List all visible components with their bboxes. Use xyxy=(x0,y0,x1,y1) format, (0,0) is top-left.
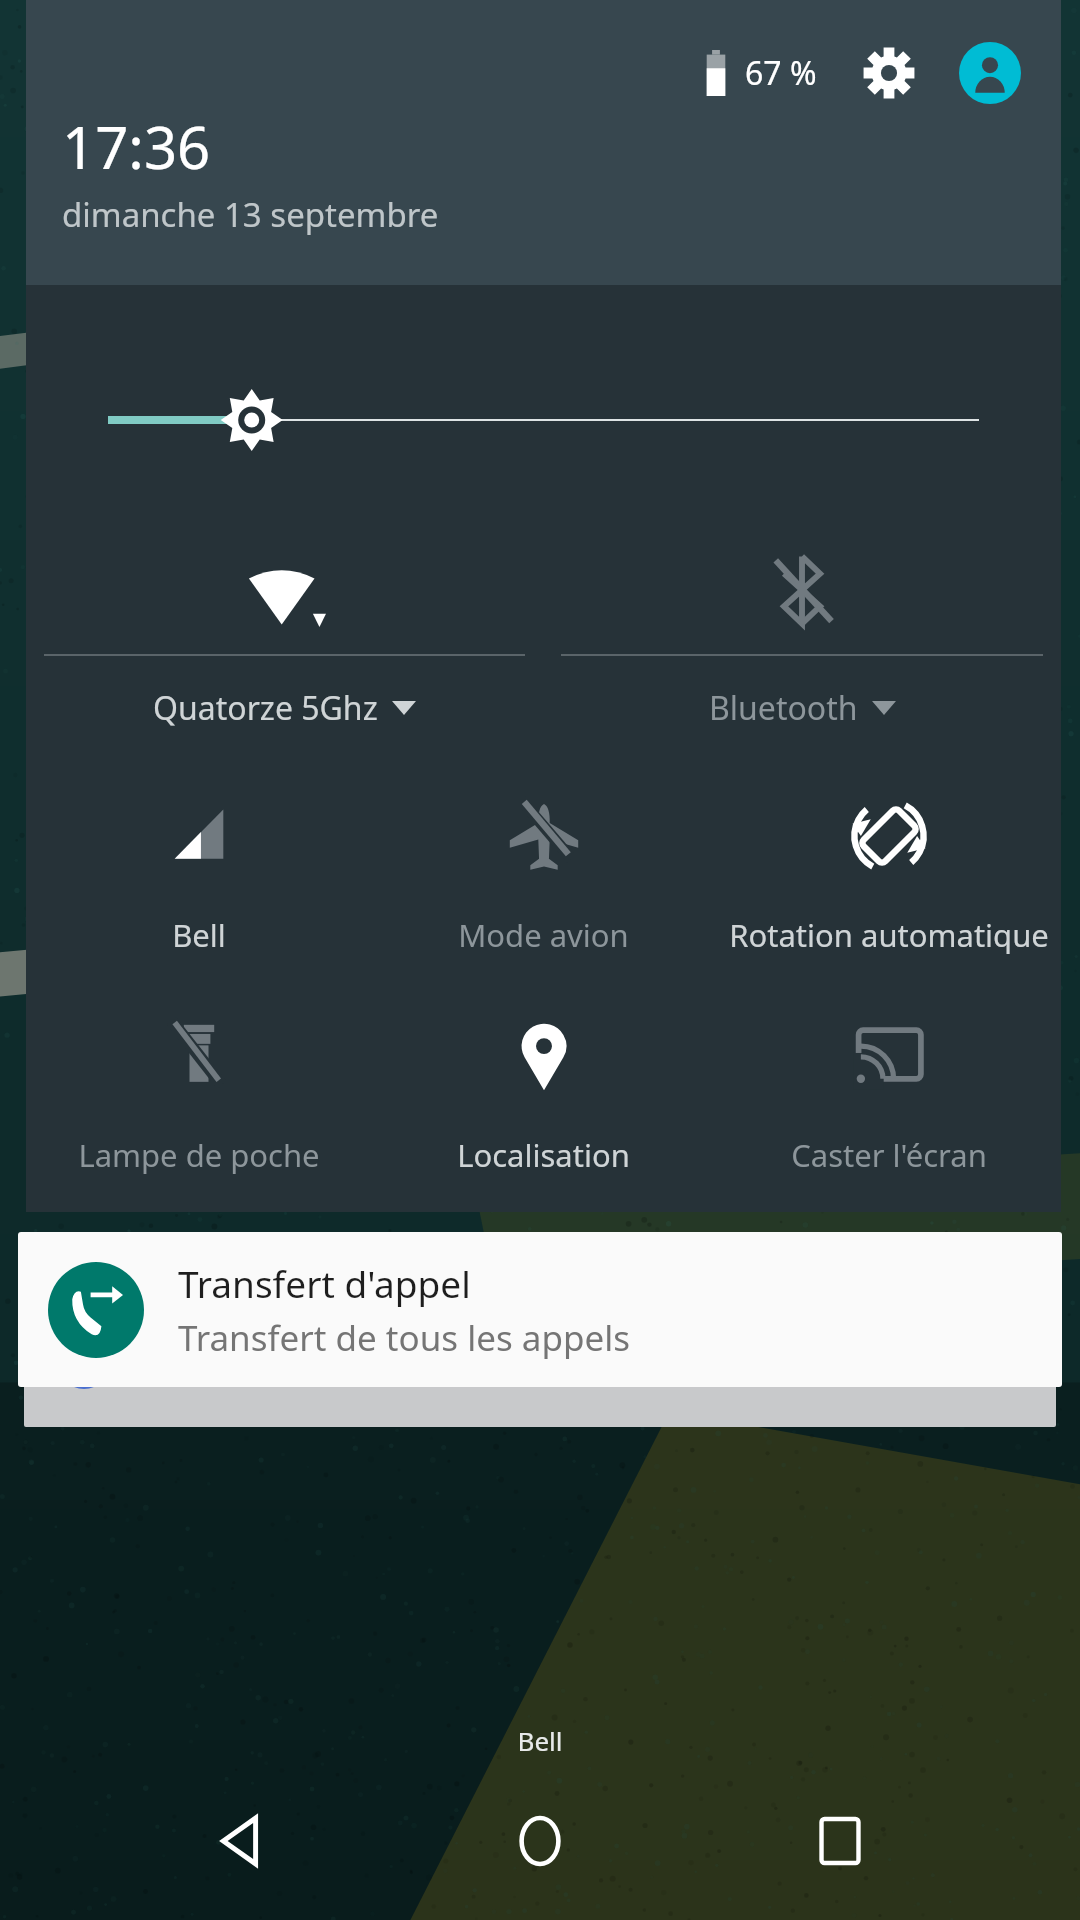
staticText: Mode avion xyxy=(458,914,629,956)
button[interactable]: Caster l'écran xyxy=(716,1008,1061,1176)
staticText: Rotation automatique xyxy=(729,914,1049,956)
button[interactable]: Lampe de poche xyxy=(26,1008,371,1176)
button[interactable]: Recents xyxy=(780,1798,900,1884)
button[interactable]: Back xyxy=(180,1798,300,1884)
button[interactable]: Localisation xyxy=(371,1008,716,1176)
staticText: Localisation xyxy=(457,1134,630,1176)
button[interactable]: Settings xyxy=(861,45,917,101)
staticText: Quatorze 5Ghz xyxy=(153,686,378,730)
button[interactable]: Bluetooth xyxy=(543,542,1061,730)
button[interactable]: Rotation automatique xyxy=(716,788,1061,956)
button[interactable]: Quatorze 5Ghz xyxy=(26,542,543,730)
button[interactable]: Transfert d'appel xyxy=(18,1232,1062,1387)
button[interactable]: Brightness xyxy=(26,380,1061,460)
staticText: Bell xyxy=(0,1723,1080,1758)
staticText: Bell xyxy=(172,914,226,956)
staticText: Transfert d'appel xyxy=(178,1258,471,1308)
button[interactable]: User xyxy=(959,42,1021,104)
staticText: dimanche 13 septembre xyxy=(62,192,439,237)
button[interactable]: Home xyxy=(480,1798,600,1884)
staticText: Bluetooth xyxy=(709,686,858,730)
other: Battery xyxy=(701,50,731,96)
staticText: Caster l'écran xyxy=(791,1134,987,1176)
staticText: Transfert de tous les appels xyxy=(178,1314,630,1362)
button[interactable]: Mode avion xyxy=(371,788,716,956)
button[interactable]: Bell xyxy=(26,788,371,956)
staticText: 17:36 xyxy=(62,107,211,186)
staticText: 67 % xyxy=(745,51,817,95)
staticText: Lampe de poche xyxy=(78,1134,320,1176)
